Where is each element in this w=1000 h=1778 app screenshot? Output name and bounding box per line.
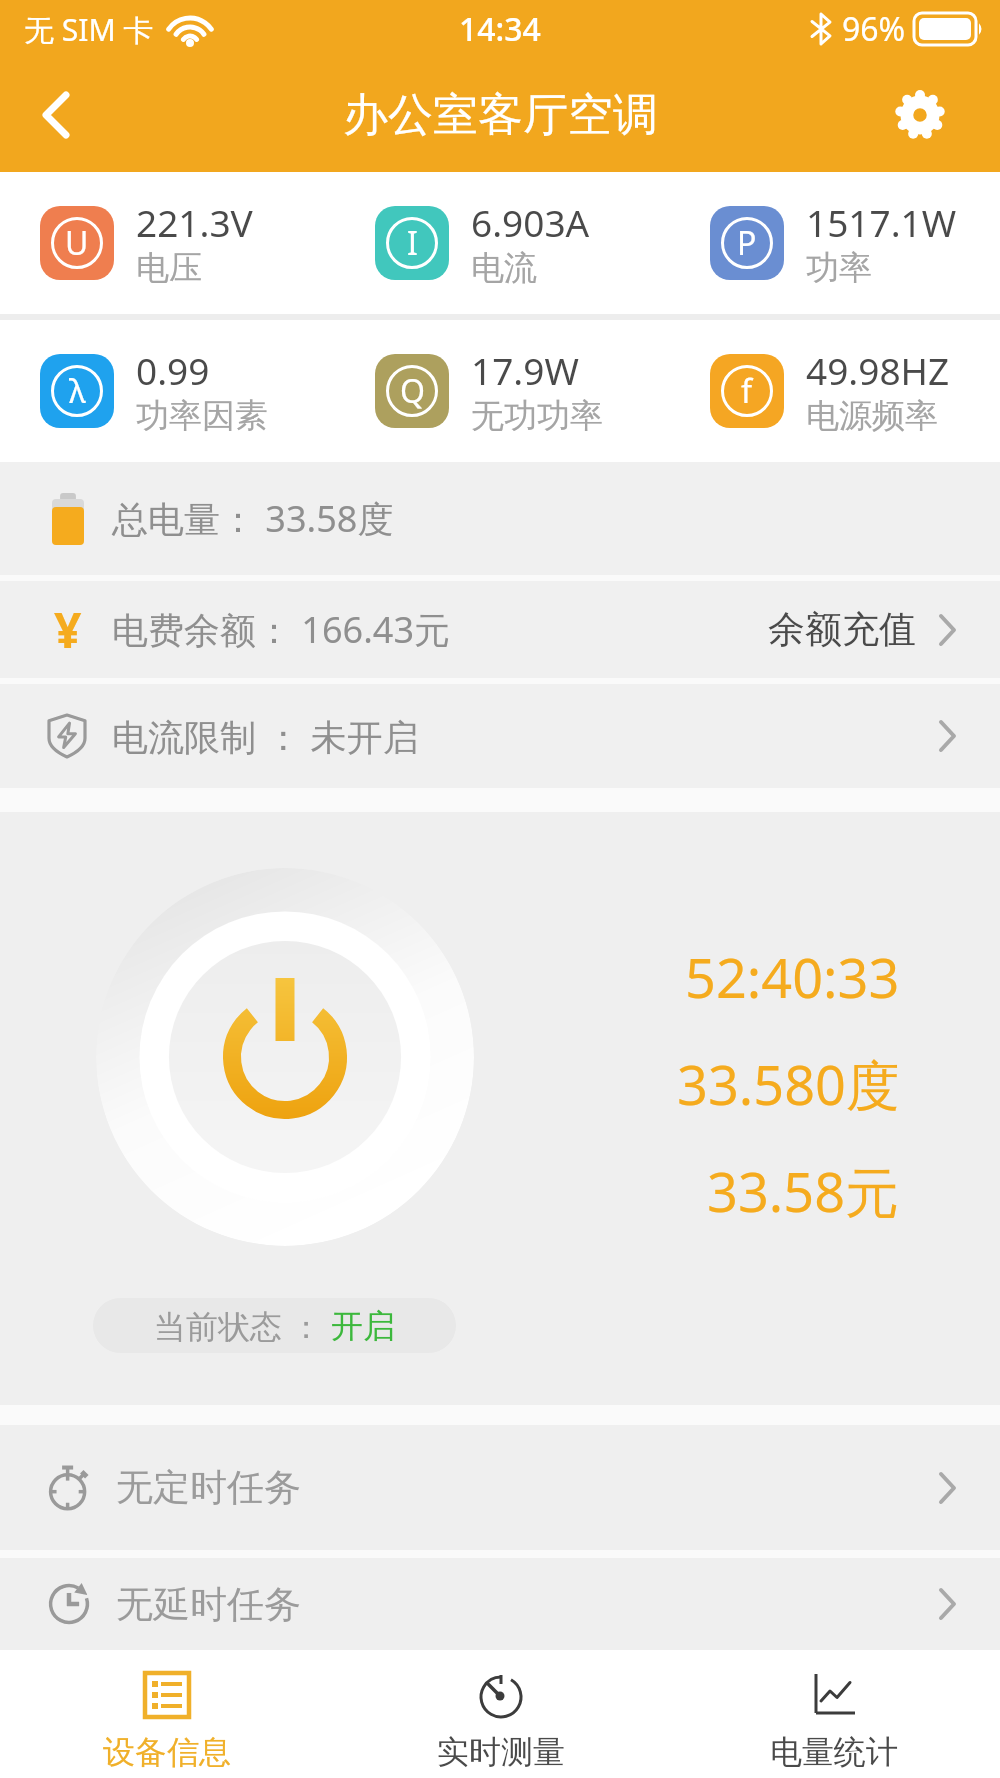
staticText: 221.3V xyxy=(136,197,253,247)
staticText: 无 SIM 卡 xyxy=(24,9,154,50)
staticText: 设备信息 xyxy=(103,1732,231,1772)
staticText: 实时测量 xyxy=(437,1732,565,1772)
staticText: 办公室客厅空调 xyxy=(343,87,658,144)
staticText: 0.99 xyxy=(136,345,210,395)
staticText: 电源频率 xyxy=(806,395,938,437)
button[interactable]: 无定时任务 xyxy=(0,1425,1000,1550)
staticText: 功率因素 xyxy=(136,395,268,437)
staticText: 无功功率 xyxy=(471,395,603,437)
staticText: 余额充值 xyxy=(768,606,916,653)
button[interactable]: ¥ xyxy=(0,581,1000,678)
staticText: 电量统计 xyxy=(770,1732,898,1772)
staticText: 无定时任务 xyxy=(116,1464,301,1511)
staticText: ¥ xyxy=(54,597,82,662)
button[interactable]: 设备信息 xyxy=(0,1650,334,1778)
button[interactable]: 实时测量 xyxy=(334,1650,667,1778)
staticText: P xyxy=(737,221,757,265)
staticText: 电流 xyxy=(471,247,537,289)
staticText: 52:40:33 xyxy=(685,940,900,1014)
staticText: I xyxy=(407,221,418,265)
button[interactable]: 无延时任务 xyxy=(0,1558,1000,1650)
staticText: 电压 xyxy=(136,247,202,289)
button[interactable]: 电流限制 ： 未开启 xyxy=(0,684,1000,788)
button[interactable] xyxy=(28,87,84,143)
staticText: 96% xyxy=(842,7,906,51)
staticText: 无延时任务 xyxy=(116,1581,301,1628)
staticText: 17.9W xyxy=(471,345,579,395)
staticText: 电费余额： 166.43元 xyxy=(112,605,450,654)
staticText: 33.580度 xyxy=(677,1047,900,1121)
button[interactable]: 总电量： 33.58度 xyxy=(0,462,1000,575)
staticText: 1517.1W xyxy=(806,197,957,247)
staticText: 功率 xyxy=(806,247,872,289)
staticText: 49.98HZ xyxy=(806,345,950,395)
staticText: 总电量： 33.58度 xyxy=(112,494,394,543)
staticText: 开启 xyxy=(331,1306,395,1346)
staticText: Q xyxy=(400,369,425,413)
button[interactable] xyxy=(96,868,474,1246)
staticText: f xyxy=(741,369,753,413)
staticText: 14:34 xyxy=(459,7,541,51)
staticText: 当前状态 ： xyxy=(154,1304,331,1348)
staticText: 33.58元 xyxy=(707,1154,900,1228)
button[interactable]: 电量统计 xyxy=(667,1650,1000,1778)
staticText: 6.903A xyxy=(471,197,590,247)
staticText: λ xyxy=(69,369,86,413)
staticText: 电流限制 ： 未开启 xyxy=(112,712,419,761)
button[interactable] xyxy=(892,87,948,143)
staticText: U xyxy=(65,221,89,265)
